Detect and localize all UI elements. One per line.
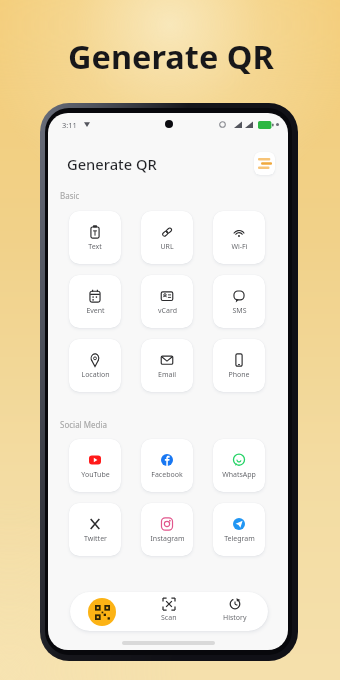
staticText: Phone bbox=[228, 370, 250, 380]
staticText: Text bbox=[88, 242, 102, 252]
button[interactable]: Event bbox=[69, 275, 121, 328]
button[interactable]: Twitter bbox=[69, 503, 121, 556]
staticText: Location bbox=[81, 370, 110, 380]
staticText: Event bbox=[86, 306, 105, 316]
staticText: URL bbox=[160, 242, 174, 252]
staticText: Email bbox=[158, 370, 176, 380]
staticText: Scan bbox=[161, 613, 177, 623]
staticText: SMS bbox=[232, 306, 247, 316]
button[interactable]: Text bbox=[69, 211, 121, 264]
button[interactable]: vCard bbox=[141, 275, 193, 328]
button[interactable]: Instagram bbox=[141, 503, 193, 556]
button[interactable]: URL bbox=[141, 211, 193, 264]
staticText: WhatsApp bbox=[222, 470, 256, 480]
staticText: Facebook bbox=[151, 470, 183, 480]
button[interactable]: Email bbox=[141, 339, 193, 392]
button[interactable]: YouTube bbox=[69, 439, 121, 492]
staticText: vCard bbox=[158, 306, 177, 316]
staticText: 3:11 bbox=[62, 120, 77, 130]
button[interactable]: Wi-Fi bbox=[213, 211, 265, 264]
staticText: Basic bbox=[60, 190, 80, 201]
staticText: YouTube bbox=[81, 470, 110, 480]
staticText: Generate QR bbox=[68, 34, 274, 78]
button[interactable]: Facebook bbox=[141, 439, 193, 492]
button[interactable]: Scan bbox=[145, 592, 193, 631]
button[interactable]: WhatsApp bbox=[213, 439, 265, 492]
button[interactable]: Location bbox=[69, 339, 121, 392]
staticText: History bbox=[223, 613, 247, 623]
staticText: Telegram bbox=[224, 534, 255, 544]
staticText: Instagram bbox=[150, 534, 185, 544]
button[interactable]: Telegram bbox=[213, 503, 265, 556]
button[interactable]: SMS bbox=[213, 275, 265, 328]
button[interactable]: Menu bbox=[254, 152, 275, 175]
button[interactable]: Phone bbox=[213, 339, 265, 392]
staticText: Twitter bbox=[84, 534, 107, 544]
staticText: Generate QR bbox=[67, 154, 157, 174]
staticText: Wi-Fi bbox=[231, 242, 248, 252]
button[interactable]: Generate QR bbox=[88, 598, 116, 626]
button[interactable]: History bbox=[211, 592, 259, 631]
staticText: Social Media bbox=[60, 419, 108, 430]
